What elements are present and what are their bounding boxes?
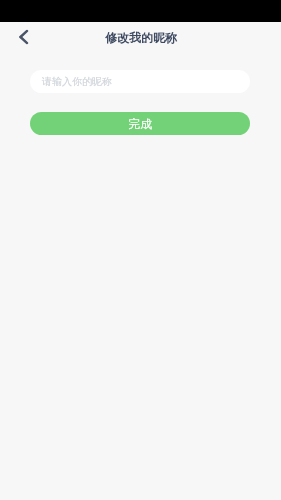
staticText: 请输入你的昵称 xyxy=(42,75,112,88)
staticText: 完成 xyxy=(128,117,152,131)
button[interactable]: Back xyxy=(10,23,38,51)
button[interactable]: 完成 xyxy=(30,112,250,135)
staticText: 修改我的昵称 xyxy=(105,30,177,45)
button[interactable]: 请输入你的昵称 xyxy=(30,70,250,93)
